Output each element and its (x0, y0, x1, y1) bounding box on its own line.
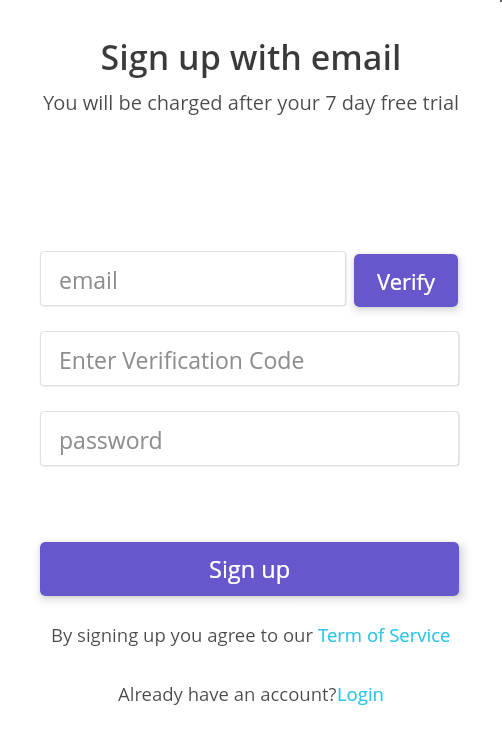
button[interactable]: Sign up (40, 542, 459, 596)
button[interactable]: Login (337, 681, 384, 706)
staticText: By signing up you agree to our (51, 622, 318, 647)
button[interactable]: Enter Verification Code (40, 331, 459, 386)
staticText: Already have an account? (118, 681, 337, 706)
button[interactable]: password (40, 411, 459, 466)
button[interactable]: Term of Service (318, 622, 451, 647)
staticText: Sign up with email (0, 34, 502, 80)
staticText: Enter Verification Code (59, 344, 305, 375)
staticText: Verify (377, 266, 436, 296)
staticText: password (59, 424, 163, 455)
staticText: email (59, 264, 118, 295)
button[interactable]: email (40, 251, 346, 306)
staticText: You will be charged after your 7 day fre… (0, 89, 502, 116)
button[interactable]: Verify (354, 254, 458, 307)
staticText: Sign up (209, 553, 291, 585)
